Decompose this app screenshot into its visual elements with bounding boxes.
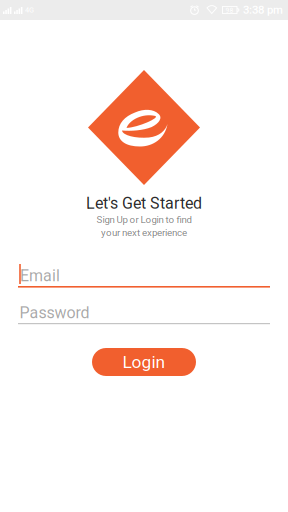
- button[interactable]: Email: [18, 264, 270, 296]
- staticText: your next experience: [101, 227, 187, 238]
- staticText: Login: [122, 352, 165, 372]
- staticText: 3:38 pm: [243, 3, 283, 17]
- staticText: Password: [19, 303, 89, 322]
- button[interactable]: Password: [18, 301, 270, 333]
- staticText: Let's Get Started: [86, 194, 202, 213]
- staticText: 4G: [25, 6, 34, 14]
- staticText: Sign Up or Login to find: [96, 214, 191, 225]
- staticText: Email: [20, 266, 60, 285]
- button[interactable]: Login: [92, 348, 196, 376]
- staticText: 98: [225, 6, 233, 14]
